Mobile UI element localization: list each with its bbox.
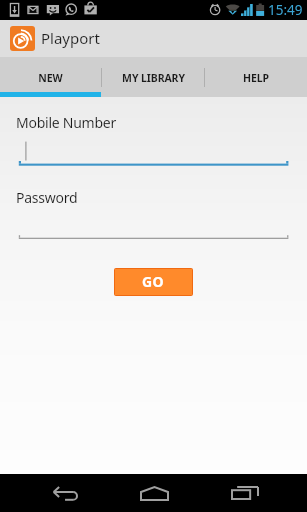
staticText: NEW [38, 71, 63, 85]
button[interactable]: HELP [205, 57, 307, 97]
button[interactable]: Home [103, 474, 205, 512]
button[interactable]: Back [0, 474, 103, 512]
staticText: GO [142, 272, 165, 291]
button[interactable]: Mobile Number field [18, 145, 288, 167]
staticText: MY LIBRARY [122, 71, 185, 85]
button[interactable]: Recent apps [205, 474, 307, 512]
staticText: Playport [41, 28, 100, 48]
button[interactable]: App logo [10, 26, 35, 51]
button[interactable]: MY LIBRARY [102, 57, 204, 97]
button[interactable]: Password field [18, 219, 288, 241]
button[interactable]: NEW [0, 57, 101, 97]
staticText: Mobile Number [16, 113, 116, 132]
staticText: 15:49 [268, 1, 303, 19]
staticText: Password [16, 188, 78, 207]
staticText: HELP [243, 71, 269, 85]
button[interactable]: GO [115, 269, 192, 295]
